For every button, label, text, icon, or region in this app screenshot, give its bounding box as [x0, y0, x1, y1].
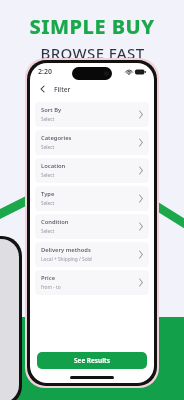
staticText: Select — [41, 172, 55, 179]
staticText: Condition — [41, 218, 69, 226]
button[interactable]: Condition — [35, 214, 149, 239]
staticText: Sort By — [41, 106, 62, 114]
staticText: Location — [41, 162, 66, 170]
staticText: Local + Shipping / Sold — [41, 256, 92, 263]
button[interactable]: Type — [35, 186, 149, 211]
button[interactable]: See Results — [37, 352, 147, 369]
staticText: SIMPLE BUY — [29, 13, 155, 40]
staticText: Categories — [41, 134, 72, 142]
button[interactable]: Location — [35, 158, 149, 183]
staticText: Select — [41, 116, 55, 123]
button[interactable]: Categories — [35, 130, 149, 155]
staticText: Select — [41, 200, 55, 207]
button[interactable]: Delivery methods — [35, 242, 149, 267]
staticText: BROWSE FAST — [40, 43, 145, 63]
staticText: Filter — [54, 85, 71, 94]
staticText: Select — [41, 144, 55, 151]
staticText: Delivery methods — [41, 246, 91, 254]
staticText: Price — [41, 274, 56, 282]
staticText: Type — [41, 190, 55, 198]
button[interactable]: Sort By — [35, 102, 149, 127]
staticText: Select — [41, 228, 55, 235]
staticText: 2:20 — [38, 67, 52, 77]
button[interactable]: Price — [35, 270, 149, 295]
button[interactable]: Back — [36, 82, 50, 96]
staticText: from - to — [41, 284, 61, 291]
staticText: See Results — [74, 356, 110, 365]
